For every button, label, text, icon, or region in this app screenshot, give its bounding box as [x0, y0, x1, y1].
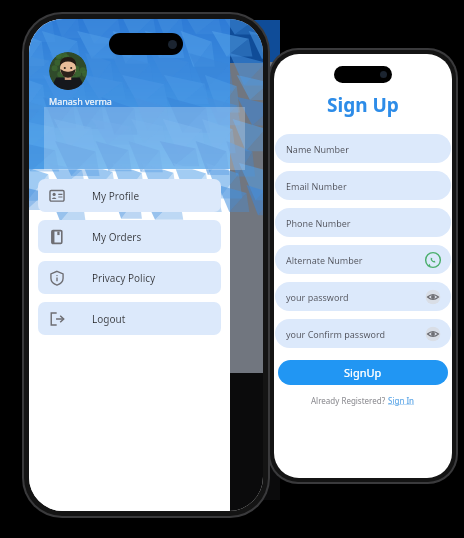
button[interactable]: Profile photo: [49, 52, 87, 90]
other: WhatsApp: [425, 252, 441, 268]
button[interactable]: Alternate Number: [275, 245, 451, 274]
button[interactable]: Logout: [38, 302, 221, 335]
staticText: Logout: [92, 312, 126, 326]
button[interactable]: Name Number: [275, 134, 451, 163]
button[interactable]: Show password: [425, 289, 441, 305]
staticText: Email Number: [286, 180, 347, 192]
button[interactable]: Privacy Policy: [38, 261, 221, 294]
staticText: Name Number: [286, 143, 349, 155]
button[interactable]: your password: [275, 282, 451, 311]
staticText: Phone Number: [286, 217, 351, 229]
button[interactable]: My Orders: [38, 220, 221, 253]
staticText: My Orders: [92, 230, 142, 244]
button[interactable]: your Confirm password: [275, 319, 451, 348]
button[interactable]: SignUp: [278, 360, 448, 385]
staticText: Privacy Policy: [92, 271, 156, 285]
button[interactable]: Email Number: [275, 171, 451, 200]
button[interactable]: My Profile: [38, 179, 221, 212]
staticText: Sign In: [388, 395, 415, 406]
staticText: your password: [286, 291, 349, 303]
button[interactable]: Show password: [425, 326, 441, 342]
staticText: SignUp: [344, 365, 382, 380]
staticText: My Profile: [92, 189, 140, 203]
staticText: Alternate Number: [286, 254, 363, 266]
button[interactable]: Sign In: [388, 395, 415, 406]
button[interactable]: Phone Number: [275, 208, 451, 237]
staticText: Sign Up: [327, 92, 399, 118]
staticText: your Confirm password: [286, 328, 386, 340]
staticText: Already Registered?: [311, 395, 388, 406]
staticText: Manash verma: [49, 95, 112, 107]
